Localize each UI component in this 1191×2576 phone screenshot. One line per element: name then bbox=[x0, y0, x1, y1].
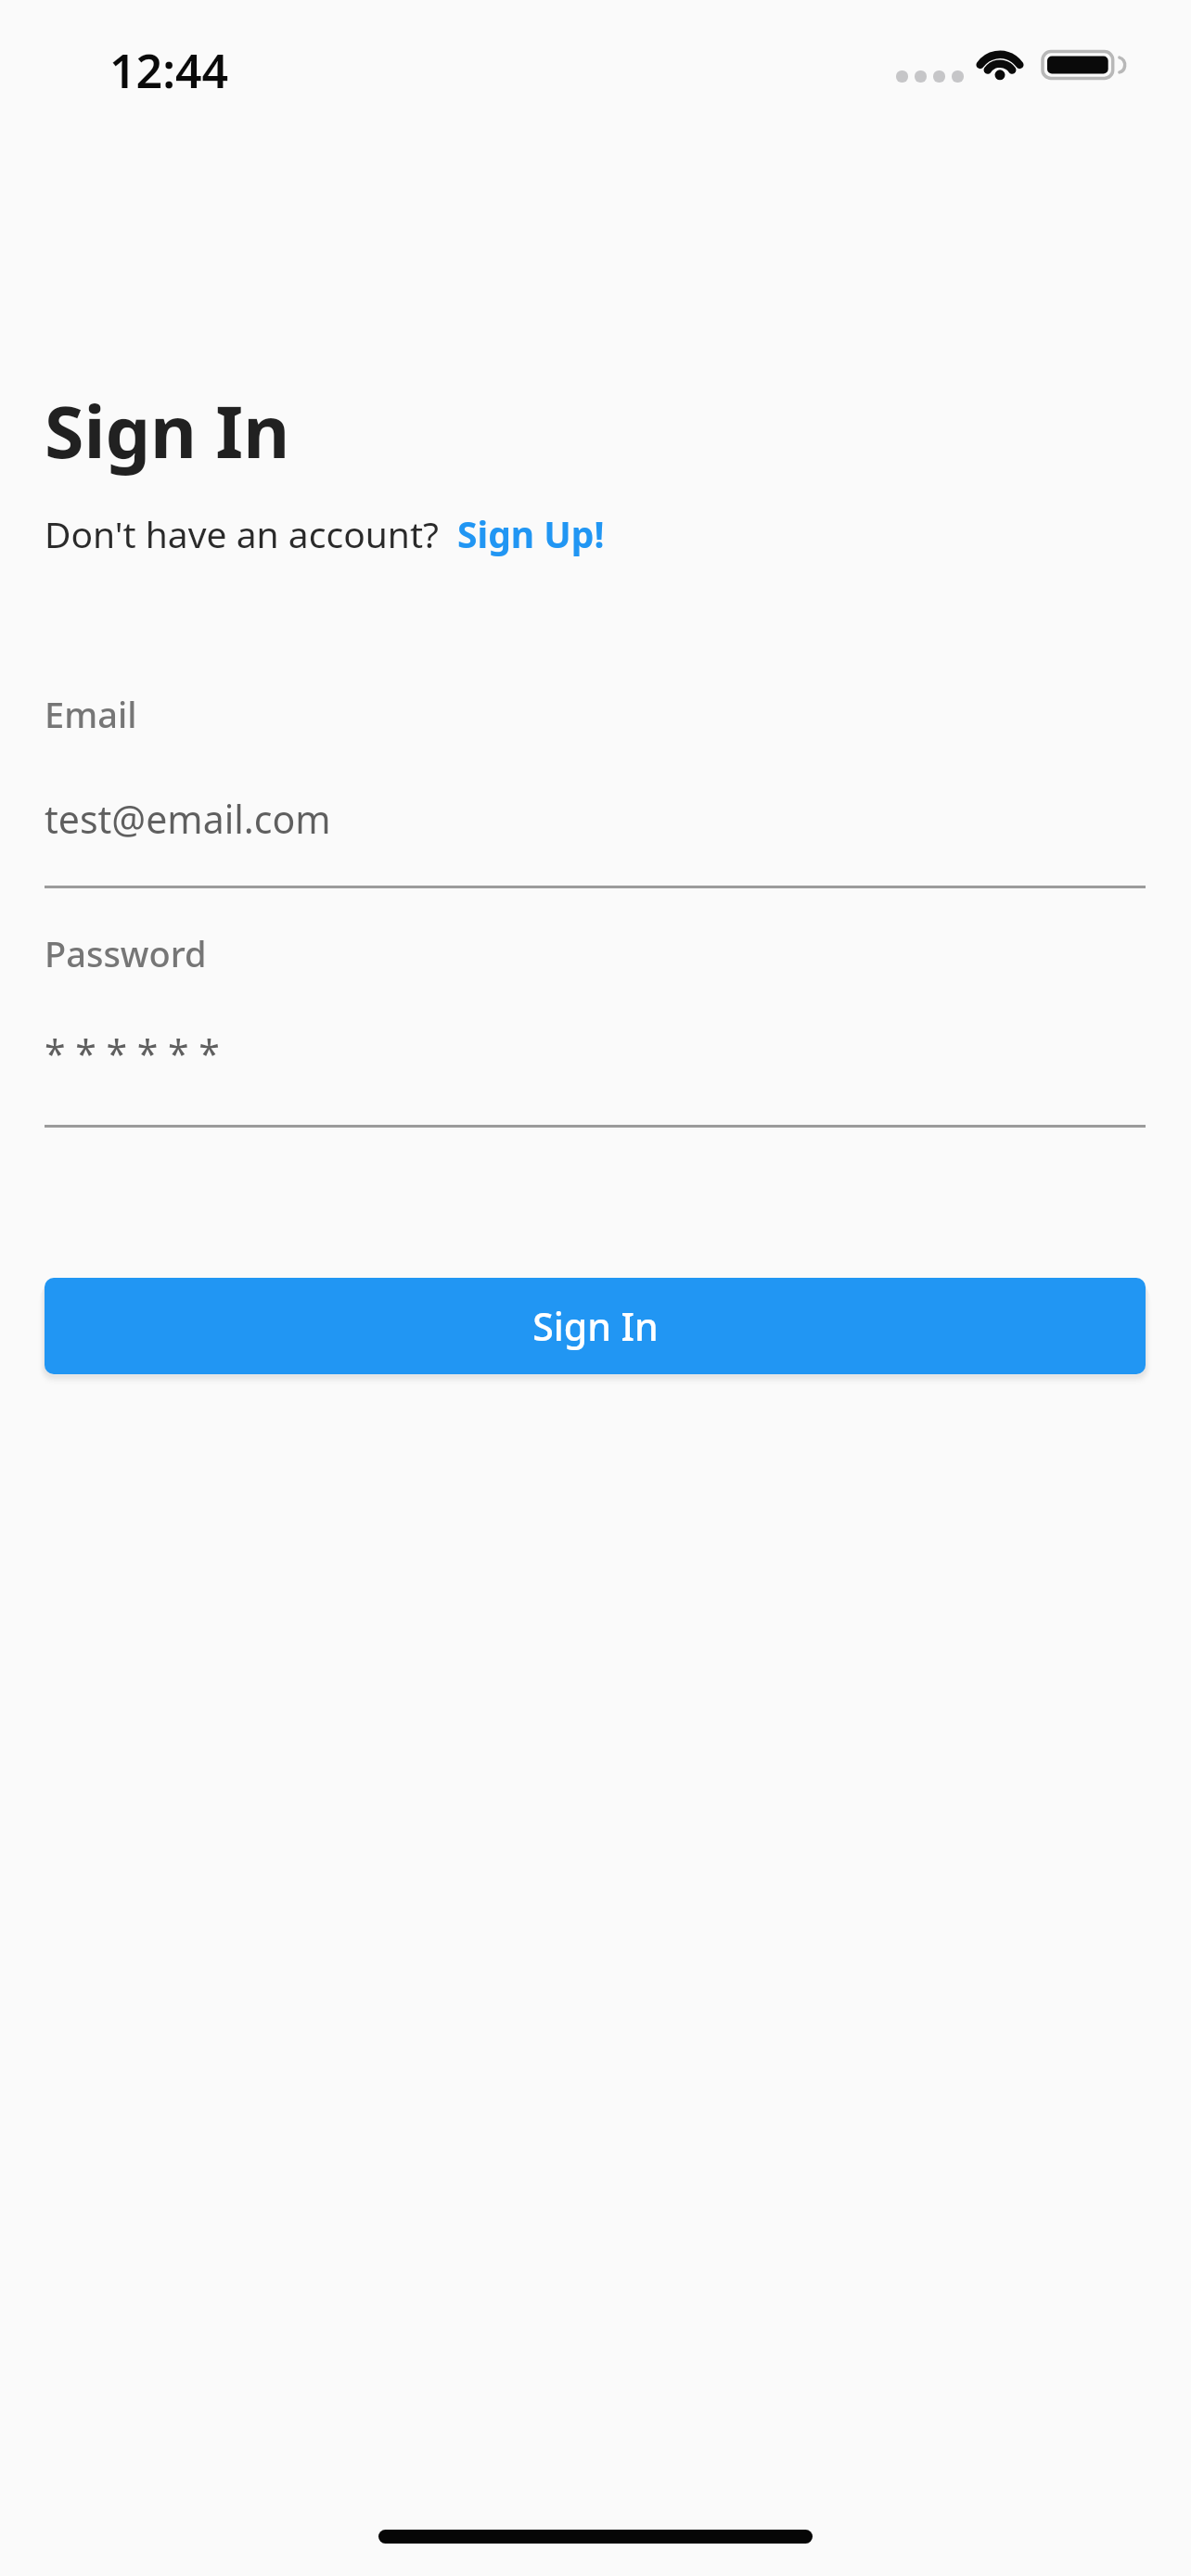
staticText: Sign In bbox=[45, 382, 290, 479]
button[interactable]: Sign In bbox=[45, 1278, 1146, 1374]
staticText: Sign Up! bbox=[457, 509, 605, 558]
staticText: Don't have an account? bbox=[45, 509, 439, 558]
staticText: test@email.com bbox=[45, 793, 331, 845]
staticText: Password bbox=[45, 929, 207, 977]
button[interactable]: Email field bbox=[45, 793, 1146, 886]
staticText: Sign In bbox=[532, 1300, 659, 1352]
staticText: 12:44 bbox=[109, 39, 229, 102]
button[interactable]: Sign Up! bbox=[457, 509, 605, 558]
staticText: * * * * * * bbox=[45, 1027, 220, 1079]
staticText: Email bbox=[45, 690, 137, 738]
button[interactable]: Password field bbox=[45, 1027, 1146, 1120]
